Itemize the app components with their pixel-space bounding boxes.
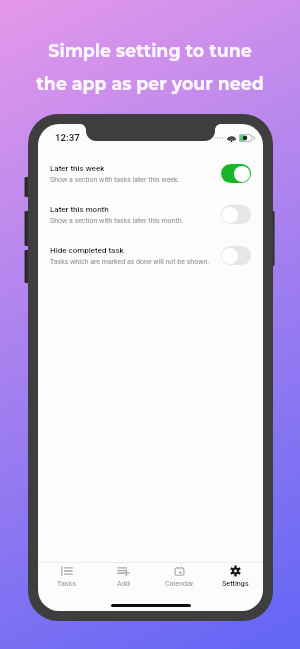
button[interactable]: Later this month: [38, 194, 263, 235]
staticText: Add: [117, 579, 130, 587]
staticText: 12:37: [55, 132, 80, 143]
staticText: Show a section with tasks later this wee…: [50, 176, 180, 184]
staticText: Settings: [222, 579, 249, 587]
staticText: Tasks which are marked as done will not …: [50, 258, 210, 266]
button[interactable]: Switch off: [221, 205, 251, 224]
button[interactable]: Later this week: [38, 153, 263, 194]
staticText: Later this week: [50, 164, 105, 173]
staticText: Simple setting to tune the app as per yo…: [36, 40, 264, 94]
button[interactable]: Hide completed task: [38, 235, 263, 276]
staticText: Calendar: [165, 579, 194, 587]
button[interactable]: Settings: [207, 563, 263, 591]
button[interactable]: Add: [95, 563, 151, 591]
staticText: Hide completed task: [50, 246, 124, 255]
button[interactable]: Tasks: [38, 563, 95, 591]
staticText: Tasks: [57, 579, 76, 587]
button[interactable]: Calendar: [151, 563, 207, 591]
staticText: Later this month: [50, 205, 109, 214]
button[interactable]: Switch on: [221, 164, 251, 183]
staticText: Show a section with tasks later this mon…: [50, 217, 184, 225]
button[interactable]: Switch off: [221, 246, 251, 265]
